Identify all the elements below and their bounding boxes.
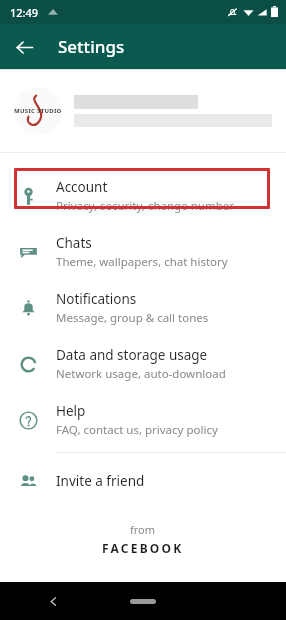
staticText: Theme, wallpapers, chat history bbox=[56, 254, 228, 270]
button[interactable]: Back bbox=[40, 588, 66, 614]
button[interactable]: Home bbox=[130, 599, 156, 604]
staticText: Data and storage usage bbox=[56, 346, 208, 364]
staticText: Settings bbox=[58, 35, 125, 58]
staticText: FAQ, contact us, privacy policy bbox=[56, 422, 218, 438]
button[interactable]: Account bbox=[0, 168, 286, 224]
staticText: Account bbox=[56, 178, 108, 196]
staticText: Message, group & call tones bbox=[56, 310, 209, 326]
button[interactable]: Help bbox=[0, 392, 286, 448]
staticText: from bbox=[130, 522, 156, 537]
staticText: MUSIC STUDIO bbox=[14, 107, 62, 115]
staticText: Chats bbox=[56, 234, 92, 252]
staticText: FACEBOOK bbox=[102, 540, 184, 556]
staticText: Notifications bbox=[56, 290, 137, 308]
staticText: Network usage, auto-download bbox=[56, 366, 226, 382]
staticText: Help bbox=[56, 402, 86, 420]
button[interactable]: Notifications bbox=[0, 280, 286, 336]
button[interactable]: MUSIC STUDIO bbox=[0, 70, 286, 152]
staticText: 12:49 bbox=[10, 5, 39, 20]
button[interactable]: Chats bbox=[0, 224, 286, 280]
button[interactable]: Data and storage usage bbox=[0, 336, 286, 392]
staticText: Privacy, security, change number bbox=[56, 198, 234, 214]
button[interactable]: Back bbox=[6, 29, 42, 65]
staticText: Invite a friend bbox=[56, 472, 145, 490]
button[interactable]: Invite a friend bbox=[0, 457, 286, 505]
